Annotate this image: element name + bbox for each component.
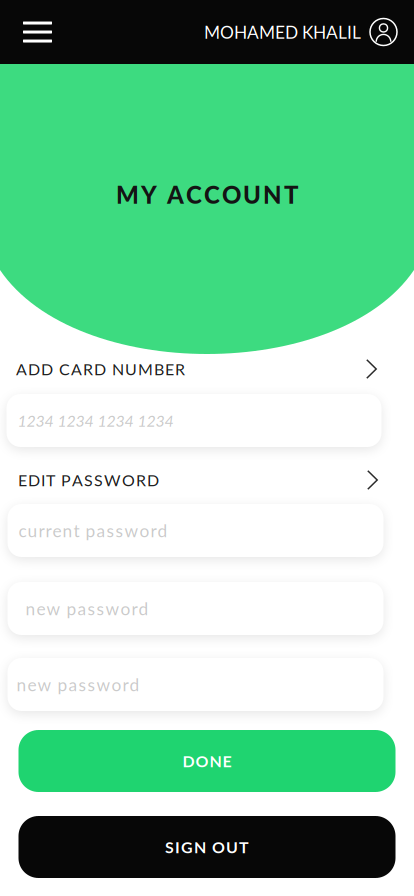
staticText: MOHAMED KHALIL [204,22,361,42]
staticText: c u r r e n t p a s s w o r d [18,520,167,541]
staticText: 1234 1234 1234 1234 [17,411,173,430]
button[interactable]: Menu [0,0,66,64]
staticText: n e w p a s s w o r d [16,674,139,695]
staticText: E D I T P A S S W O R D [18,470,159,490]
button[interactable]: MOHAMED KHALIL [204,0,414,64]
button[interactable]: S I G N O U T [18,816,395,878]
staticText: S I G N O U T [165,837,249,857]
staticText: A D D C A R D N U M B E R [16,359,185,379]
button[interactable]: A D D C A R D N U M B E R [0,354,414,384]
staticText: M Y A C C O U N T [116,180,298,209]
staticText: n e w p a s s w o r d [25,598,148,619]
button[interactable]: E D I T P A S S W O R D [0,465,414,495]
staticText: D O N E [182,751,231,771]
button[interactable]: D O N E [18,730,395,792]
